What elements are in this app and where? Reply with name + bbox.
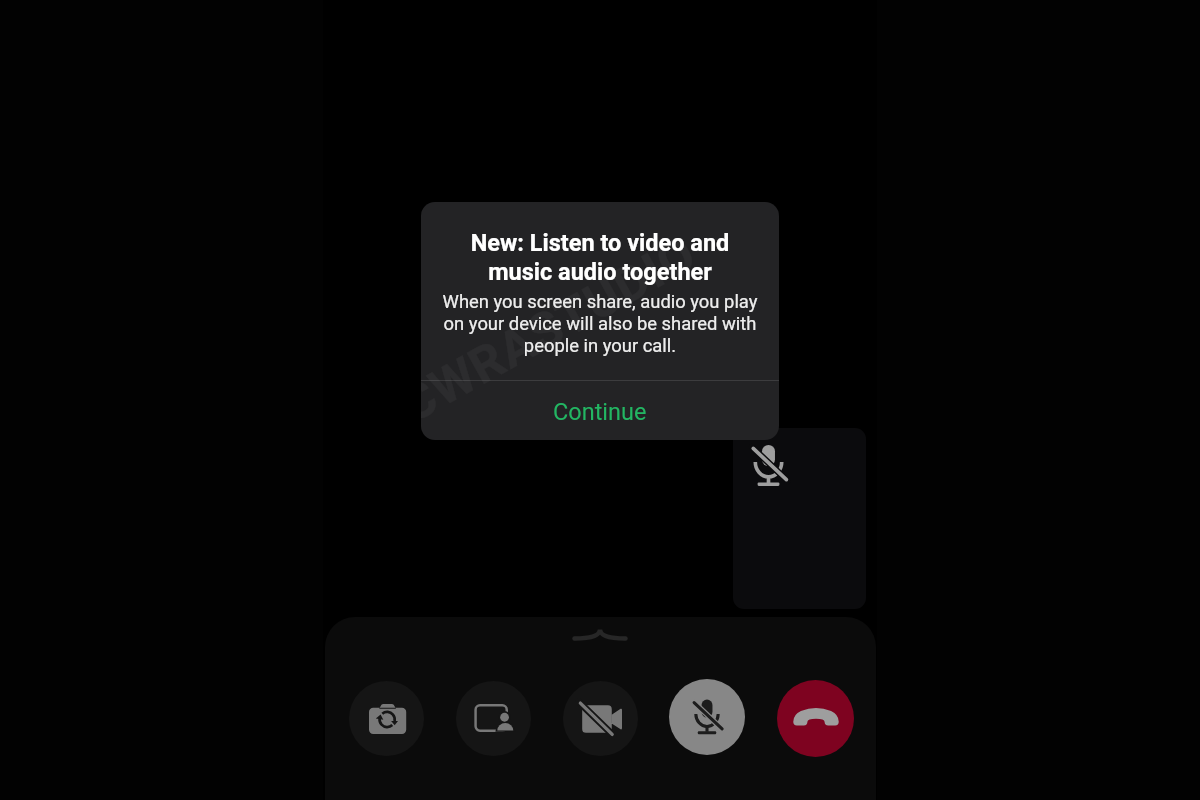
button[interactable]: Share screen <box>456 681 531 756</box>
button[interactable]: Continue <box>421 381 779 440</box>
button[interactable]: Expand controls <box>572 626 628 644</box>
staticText: CWRASTUDIO <box>421 224 707 435</box>
staticText: New: Listen to video and music audio tog… <box>451 229 749 286</box>
button[interactable]: Flip camera <box>349 681 424 756</box>
button[interactable]: Your camera preview <box>733 428 866 609</box>
button[interactable]: End call <box>777 680 854 757</box>
staticText: Continue <box>553 398 647 426</box>
button[interactable]: Turn off video <box>563 681 638 756</box>
button[interactable]: Unmute <box>669 679 745 755</box>
staticText: When you screen share, audio you play on… <box>437 291 763 357</box>
